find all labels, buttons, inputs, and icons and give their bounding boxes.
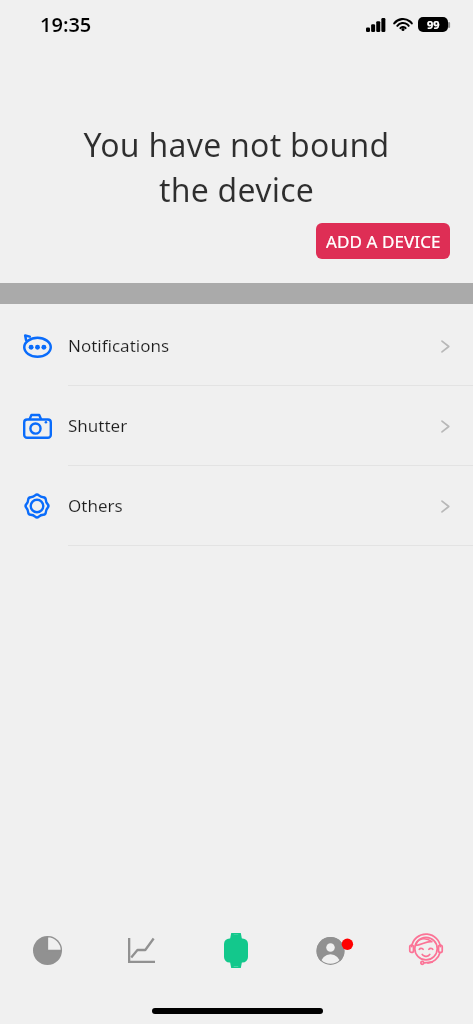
button[interactable]: Device — [188, 919, 283, 981]
button[interactable]: Notifications — [0, 306, 473, 386]
button[interactable]: Statistics — [0, 919, 94, 981]
staticText: Shutter — [68, 414, 128, 437]
button[interactable]: Support — [378, 919, 473, 981]
button[interactable]: Profile — [283, 919, 378, 981]
button[interactable]: Trends — [94, 919, 188, 981]
staticText: 99 — [427, 17, 440, 32]
button[interactable]: Shutter — [0, 386, 473, 466]
staticText: Others — [68, 494, 123, 517]
staticText: 19:35 — [40, 11, 92, 38]
staticText: You have not bound the device — [0, 123, 473, 211]
staticText: ADD A DEVICE — [326, 230, 441, 253]
button[interactable]: Others — [0, 466, 473, 546]
staticText: Notifications — [68, 334, 170, 357]
button[interactable]: ADD A DEVICE — [316, 223, 450, 259]
